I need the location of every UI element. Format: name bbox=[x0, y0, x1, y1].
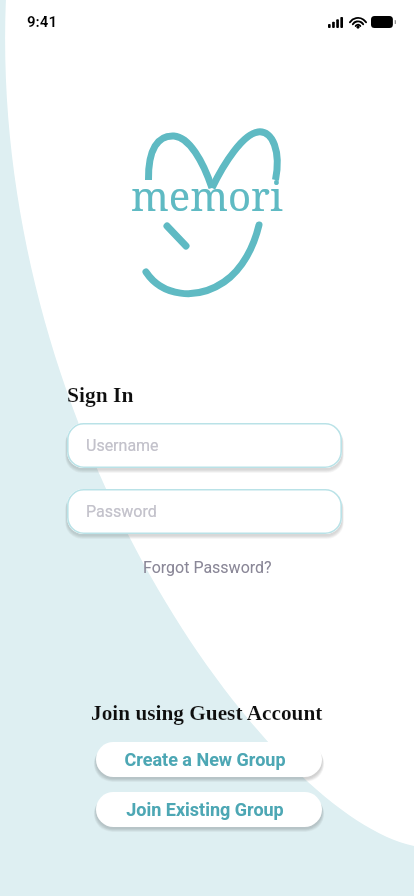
staticText: Forgot Password? bbox=[143, 558, 272, 577]
button[interactable]: Username bbox=[67, 423, 342, 468]
button[interactable]: Join Existing Group bbox=[96, 792, 322, 827]
staticText: Password bbox=[86, 502, 157, 521]
staticText: 9:41 bbox=[27, 13, 58, 31]
button[interactable]: Password bbox=[67, 489, 342, 534]
staticText: Sign In bbox=[67, 383, 134, 407]
staticText: Join Existing Group bbox=[126, 799, 284, 820]
button[interactable]: Forgot Password? bbox=[133, 555, 282, 580]
staticText: Username bbox=[86, 436, 159, 455]
staticText: Join using Guest Account bbox=[91, 701, 323, 725]
staticText: Create a New Group bbox=[124, 749, 286, 770]
button[interactable]: Create a New Group bbox=[96, 742, 322, 777]
staticText: memori bbox=[131, 168, 283, 222]
